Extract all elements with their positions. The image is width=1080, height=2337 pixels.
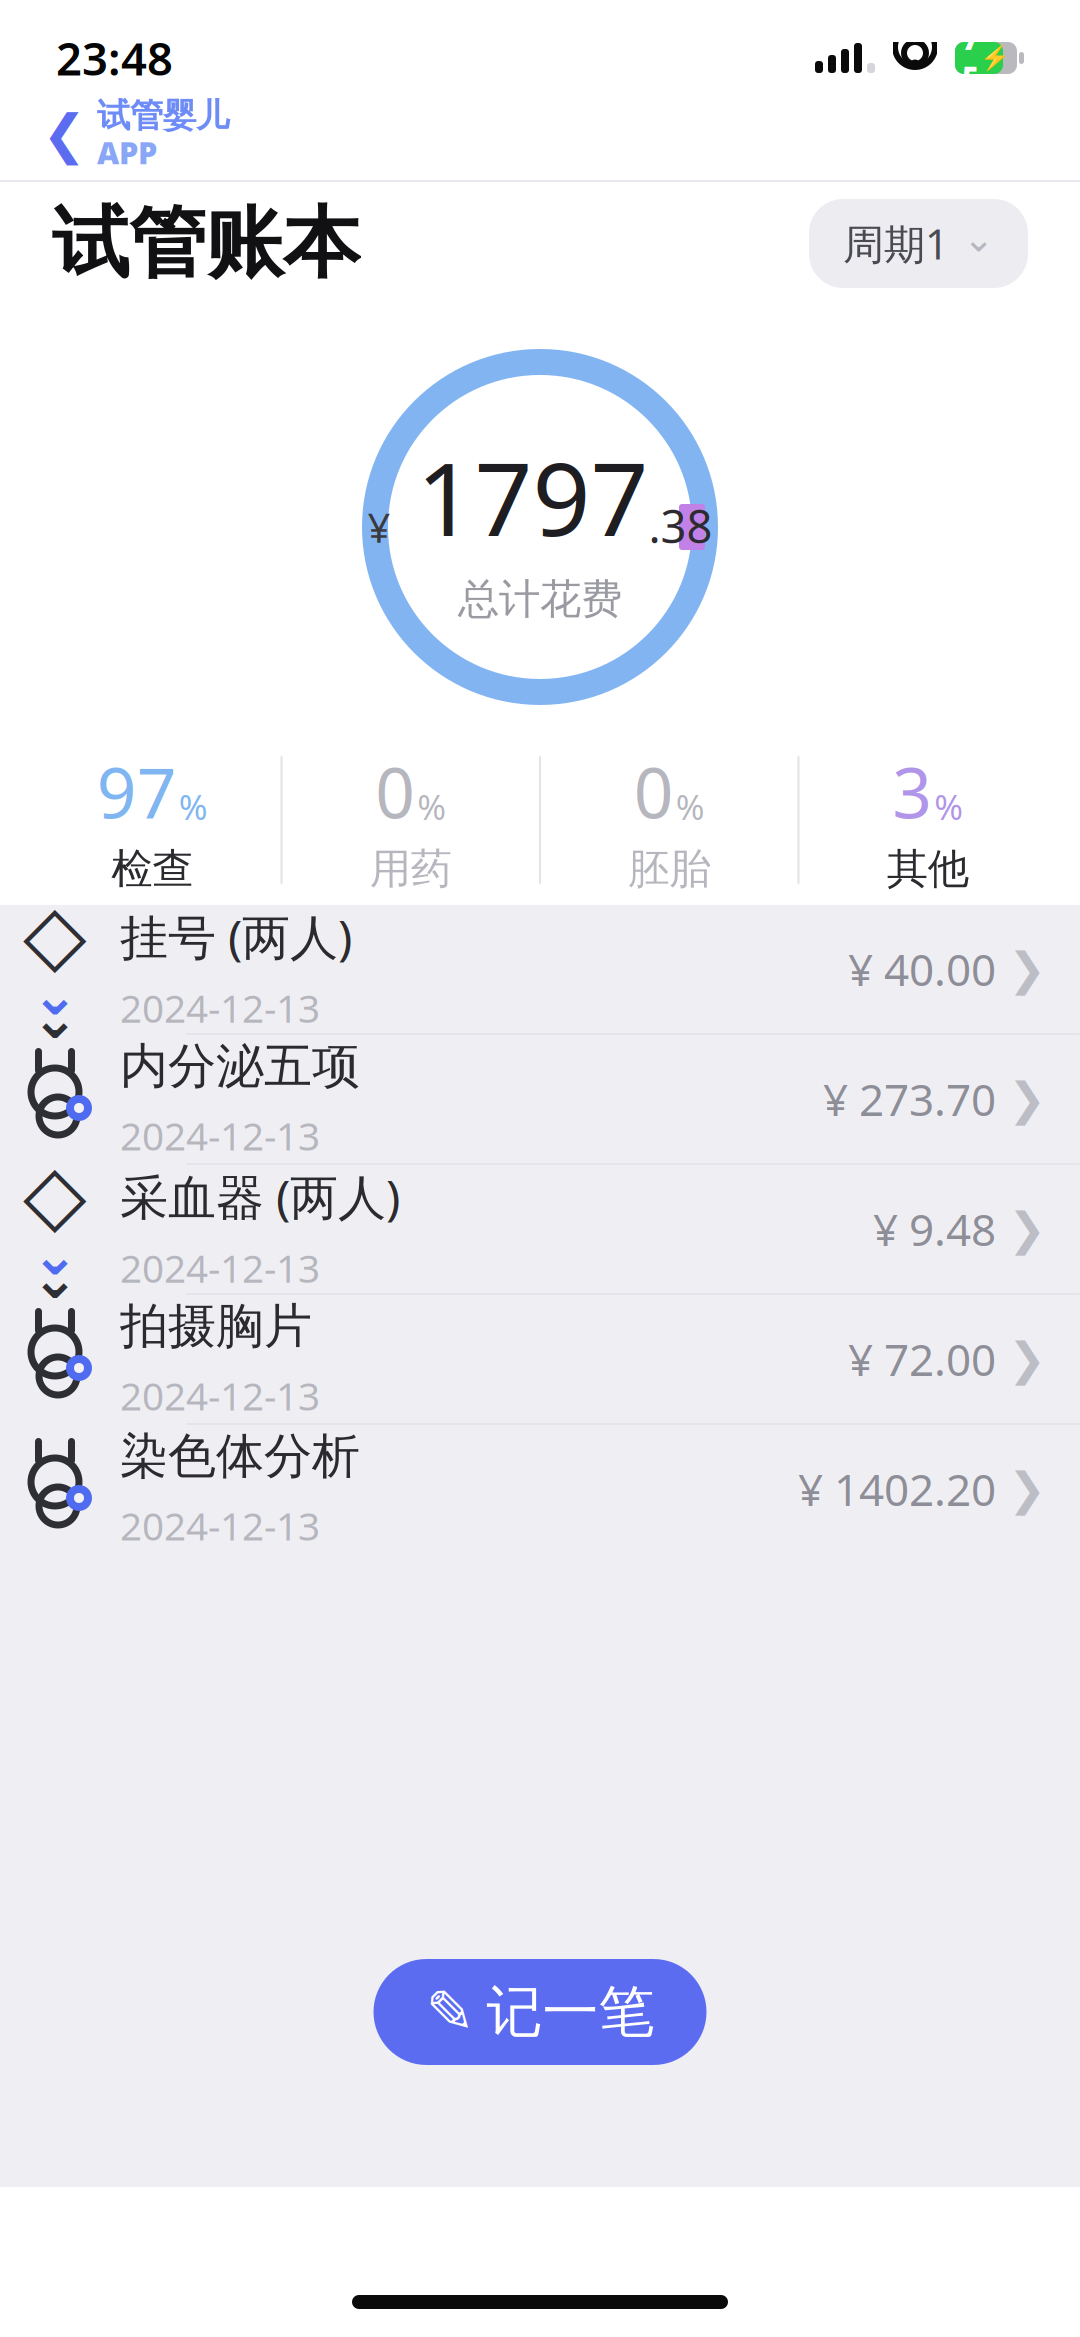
staticText: 试管婴儿	[97, 95, 229, 136]
staticText: ⌄	[31, 1247, 78, 1310]
staticText: 2024-12-13	[120, 1242, 320, 1293]
staticText: ⌄	[31, 1223, 78, 1287]
staticText: .38	[648, 496, 712, 556]
staticText: 23:48	[56, 28, 173, 88]
staticText: ¥ 40.00	[848, 940, 996, 998]
staticText: ❯	[1008, 1203, 1046, 1255]
staticText: %	[417, 784, 446, 830]
staticText: 挂号 (两人)	[120, 904, 352, 968]
staticText: ❮	[42, 104, 87, 164]
button[interactable]: 返回 试管婴儿 APP	[42, 89, 229, 179]
button[interactable]: 周期1	[809, 199, 1028, 288]
staticText: 3	[892, 746, 932, 838]
staticText: 75	[962, 19, 979, 97]
staticText: ⌄	[31, 963, 78, 1027]
staticText: 记一笔	[486, 1978, 654, 2046]
staticText: 总计花费	[458, 574, 622, 625]
staticText: 内分泌五项	[120, 1037, 360, 1096]
button[interactable]: 内分泌五项	[0, 1035, 1080, 1165]
staticText: APP	[97, 132, 157, 173]
button[interactable]: ✎	[373, 1959, 706, 2065]
staticText: ¥ 72.00	[848, 1330, 996, 1388]
button[interactable]: 拍摄胸片	[0, 1295, 1080, 1425]
staticText: ¥ 1402.20	[798, 1460, 996, 1518]
staticText: ¥	[367, 501, 390, 554]
staticText: %	[676, 784, 705, 830]
staticText: 其他	[887, 844, 969, 894]
staticText: 采血器 (两人)	[120, 1164, 400, 1228]
staticText: ❯	[1008, 1073, 1046, 1125]
button[interactable]: ◇	[0, 905, 1080, 1035]
staticText: 2024-12-13	[120, 1110, 320, 1161]
staticText: 97	[97, 746, 177, 838]
staticText: ¥ 273.70	[823, 1070, 996, 1128]
staticText: ¥ 9.48	[873, 1200, 996, 1258]
staticText: ◇	[23, 887, 87, 981]
staticText: 0	[375, 746, 415, 838]
staticText: 染色体分析	[120, 1427, 360, 1486]
staticText: ⌄	[31, 987, 78, 1050]
staticText: ⌄	[963, 217, 994, 260]
staticText: 1797	[390, 429, 648, 564]
staticText: 周期1	[843, 216, 949, 271]
staticText: ◇	[23, 1147, 87, 1241]
staticText: ⚡	[980, 44, 1010, 72]
staticText: 拍摄胸片	[120, 1297, 312, 1356]
staticText: 2024-12-13	[120, 1500, 320, 1551]
staticText: %	[179, 784, 208, 830]
button[interactable]: 染色体分析	[0, 1425, 1080, 1553]
staticText: 2024-12-13	[120, 982, 320, 1033]
staticText: 试管账本	[52, 196, 360, 291]
button[interactable]: ◇	[0, 1165, 1080, 1295]
staticText: ❯	[1008, 1463, 1046, 1515]
staticText: 0	[634, 746, 674, 838]
staticText: 2024-12-13	[120, 1370, 320, 1421]
staticText: 检查	[111, 844, 193, 894]
staticText: ✎	[425, 1979, 474, 2045]
staticText: ❯	[1008, 943, 1046, 995]
staticText: ❯	[1008, 1333, 1046, 1385]
staticText: 用药	[370, 844, 452, 894]
staticText: %	[934, 784, 963, 830]
staticText: 胚胎	[628, 844, 710, 894]
